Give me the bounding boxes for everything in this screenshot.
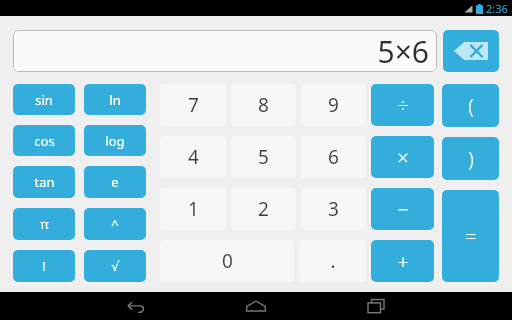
staticText: 0 <box>222 248 233 274</box>
staticText: ^ <box>111 215 119 233</box>
staticText: 2:36 <box>486 1 508 16</box>
button[interactable]: Back <box>106 292 166 320</box>
button[interactable]: − <box>371 188 434 230</box>
button[interactable]: + <box>371 240 434 282</box>
staticText: 3 <box>328 196 339 222</box>
staticText: ) <box>468 145 474 172</box>
staticText: ln <box>109 91 121 109</box>
button[interactable]: 0 <box>160 240 294 282</box>
button[interactable]: π <box>13 208 75 240</box>
staticText: + <box>397 248 409 275</box>
staticText: tan <box>34 173 55 191</box>
staticText: − <box>397 196 409 223</box>
button[interactable]: 2 <box>231 188 296 230</box>
button[interactable]: ( <box>442 84 499 127</box>
button[interactable]: e <box>84 166 146 198</box>
staticText: 6 <box>328 144 339 170</box>
staticText: log <box>105 132 125 150</box>
button[interactable]: 5×6 <box>13 30 437 72</box>
staticText: √ <box>111 259 120 274</box>
button[interactable]: 5 <box>231 136 296 178</box>
button[interactable]: ÷ <box>371 84 434 126</box>
button[interactable]: √ <box>84 250 146 282</box>
button[interactable]: Backspace <box>443 30 499 72</box>
button[interactable]: log <box>84 125 146 156</box>
staticText: cos <box>34 132 55 150</box>
button[interactable]: cos <box>13 125 75 156</box>
staticText: 2 <box>258 196 269 222</box>
button[interactable]: sin <box>13 84 75 115</box>
staticText: × <box>397 144 409 171</box>
button[interactable]: Home <box>226 292 286 320</box>
staticText: 1 <box>188 196 199 222</box>
button[interactable]: 9 <box>301 84 366 126</box>
button[interactable]: ln <box>84 84 146 115</box>
button[interactable]: 3 <box>301 188 366 230</box>
staticText: 8 <box>258 92 269 118</box>
button[interactable]: ^ <box>84 208 146 240</box>
button[interactable]: . <box>299 240 366 282</box>
staticText: sin <box>35 91 53 109</box>
button[interactable]: × <box>371 136 434 178</box>
staticText: . <box>330 248 336 274</box>
staticText: e <box>111 173 119 191</box>
button[interactable]: ! <box>13 250 75 282</box>
button[interactable]: = <box>442 190 499 282</box>
button[interactable]: tan <box>13 166 75 198</box>
staticText: π <box>40 215 49 233</box>
button[interactable]: 4 <box>160 136 226 178</box>
staticText: 7 <box>188 92 199 118</box>
staticText: 5 <box>258 144 269 170</box>
button[interactable]: Recents <box>346 292 406 320</box>
button[interactable]: 8 <box>231 84 296 126</box>
staticText: = <box>465 223 477 250</box>
staticText: ÷ <box>397 92 409 119</box>
staticText: 4 <box>188 144 199 170</box>
button[interactable]: 6 <box>301 136 366 178</box>
button[interactable]: ) <box>442 137 499 180</box>
button[interactable]: 7 <box>160 84 226 126</box>
staticText: ( <box>468 92 474 119</box>
button[interactable]: 1 <box>160 188 226 230</box>
staticText: 5×6 <box>377 31 429 72</box>
staticText: ! <box>42 257 46 275</box>
staticText: 9 <box>328 92 339 118</box>
